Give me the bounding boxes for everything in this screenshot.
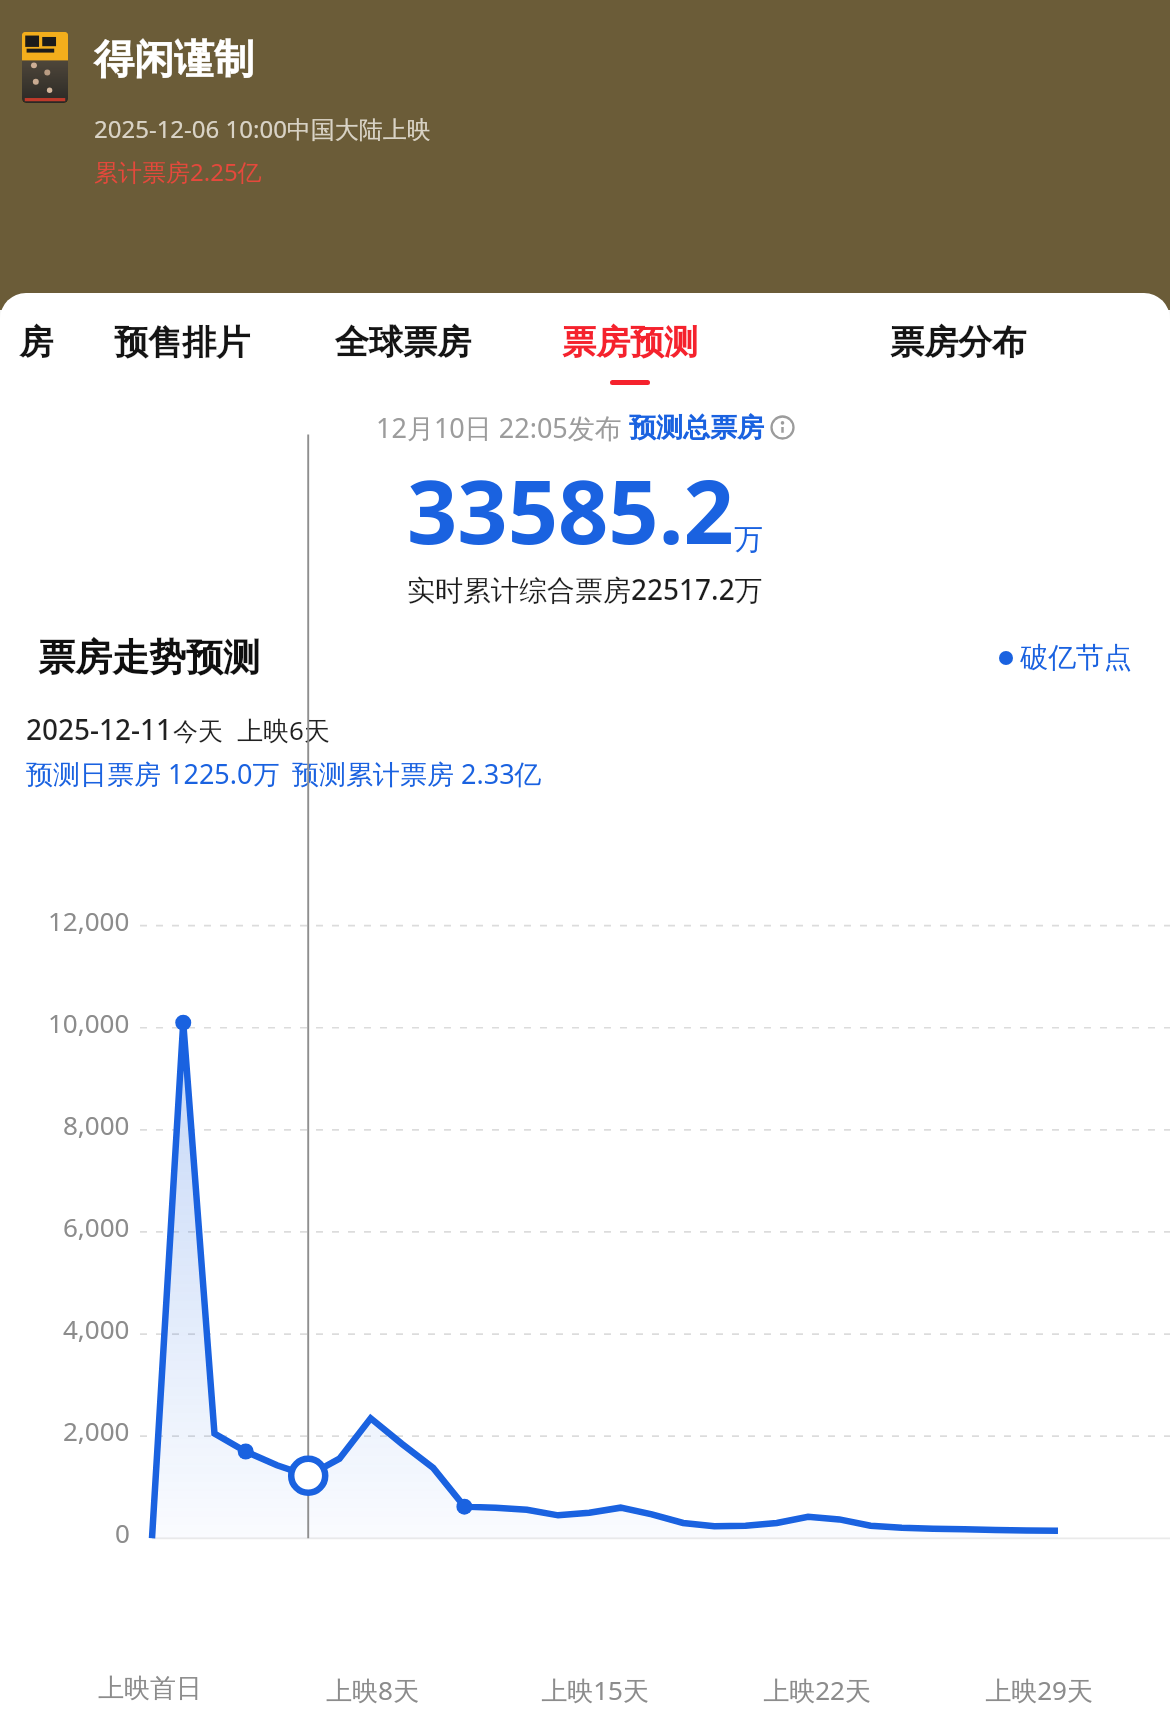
staticText: 2025-12-11 (26, 710, 173, 748)
staticText: 10,000 (48, 1005, 130, 1040)
staticText: 票房分布 (890, 321, 1026, 364)
staticText: 破亿节点 (1020, 640, 1132, 675)
staticText: 房 (19, 321, 53, 364)
button[interactable]: 全球票房 (292, 297, 514, 409)
staticText: 33585.2 (407, 450, 734, 570)
staticText: 上映首日 (98, 1672, 202, 1705)
button[interactable]: 预售排片 (72, 297, 292, 409)
button[interactable]: Movie poster (22, 32, 68, 103)
staticText: 实时累计综合票房22517.2万 (407, 570, 763, 608)
staticText: 12,000 (48, 903, 130, 938)
staticText: 2,000 (63, 1413, 130, 1448)
staticText: 预测总票房 (629, 411, 764, 445)
staticText: 票房走势预测 (38, 634, 260, 681)
staticText: 上映6天 (237, 712, 330, 748)
staticText: 今天 (173, 716, 223, 747)
other: Info (770, 415, 795, 440)
staticText: 4,000 (63, 1311, 130, 1346)
staticText: 上映22天 (763, 1672, 871, 1708)
staticText: 上映29天 (985, 1672, 1093, 1708)
staticText: 预售排片 (114, 321, 250, 364)
button[interactable]: 票房预测 (514, 297, 746, 409)
button[interactable]: 房 (0, 297, 72, 409)
button[interactable]: 破亿节点 (999, 640, 1132, 675)
button[interactable]: 2025-12-11 (14, 699, 554, 803)
staticText: 预测累计票房 2.33亿 (292, 755, 542, 792)
staticText: 0 (115, 1515, 130, 1550)
staticText: 12月10日 22:05发布 (376, 409, 629, 446)
staticText: 上映8天 (326, 1672, 419, 1708)
staticText: 全球票房 (335, 321, 471, 364)
staticText: 得闲谨制 (94, 34, 254, 84)
staticText: 8,000 (63, 1107, 130, 1142)
staticText: 上映15天 (541, 1672, 649, 1708)
staticText: 累计票房2.25亿 (94, 155, 262, 188)
staticText: 6,000 (63, 1209, 130, 1244)
staticText: 票房预测 (562, 321, 698, 364)
staticText: 万 (734, 521, 763, 558)
button[interactable]: 12月10日 22:05发布 (376, 409, 795, 446)
staticText: 2025-12-06 10:00中国大陆上映 (94, 112, 431, 145)
button[interactable]: 票房分布 (746, 297, 1170, 409)
staticText: 预测日票房 1225.0万 (26, 755, 280, 792)
